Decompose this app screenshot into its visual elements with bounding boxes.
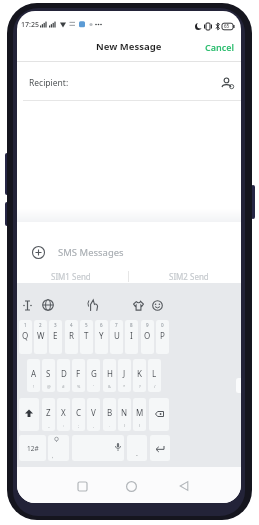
staticText: S bbox=[46, 368, 51, 379]
staticText: @ bbox=[47, 384, 51, 389]
staticText: Recipient: bbox=[29, 77, 69, 89]
staticText: U bbox=[114, 330, 120, 341]
button[interactable]: X bbox=[57, 398, 70, 431]
button[interactable] bbox=[39, 292, 56, 318]
button[interactable]: 1 bbox=[19, 320, 32, 354]
button[interactable]: L bbox=[148, 359, 161, 392]
button[interactable]: 6 bbox=[95, 320, 108, 354]
button[interactable]: K bbox=[133, 359, 146, 392]
staticText: 1 bbox=[24, 322, 27, 328]
staticText: & bbox=[108, 384, 111, 389]
button[interactable]: 3 bbox=[49, 320, 62, 354]
button[interactable]: Z bbox=[42, 398, 55, 431]
staticText: , bbox=[52, 453, 54, 460]
staticText: , bbox=[93, 423, 95, 428]
staticText: L bbox=[152, 368, 157, 379]
staticText: Z bbox=[46, 407, 51, 418]
staticText: W bbox=[37, 330, 45, 341]
button[interactable]: SMS Messages bbox=[32, 245, 124, 260]
button[interactable] bbox=[111, 469, 151, 503]
staticText: SMS Messages bbox=[58, 246, 124, 259]
button[interactable] bbox=[164, 469, 204, 503]
staticText: R bbox=[69, 330, 74, 341]
staticText: # bbox=[62, 384, 65, 389]
button[interactable]: 5 bbox=[80, 320, 93, 354]
staticText: SIM1 Send bbox=[51, 271, 91, 282]
staticText: Y bbox=[99, 330, 104, 341]
button[interactable]: 4 bbox=[65, 320, 78, 354]
button[interactable] bbox=[72, 435, 124, 461]
button[interactable] bbox=[129, 292, 147, 318]
button[interactable]: Cancel bbox=[205, 41, 235, 53]
staticText: B bbox=[107, 407, 113, 418]
button[interactable]: H bbox=[103, 359, 116, 392]
button[interactable]: G bbox=[87, 359, 100, 392]
button[interactable]: Recipient: bbox=[17, 65, 241, 101]
button[interactable]: SIM2 Send bbox=[129, 268, 241, 285]
staticText: V bbox=[91, 407, 96, 418]
staticText: F bbox=[76, 368, 81, 379]
button[interactable] bbox=[84, 292, 102, 318]
staticText: X bbox=[61, 407, 66, 418]
staticText: P bbox=[160, 330, 165, 341]
staticText: ( bbox=[139, 423, 141, 428]
button[interactable] bbox=[19, 398, 39, 431]
button[interactable]: SIM1 Send bbox=[17, 268, 128, 285]
staticText: A bbox=[31, 368, 37, 379]
staticText: H bbox=[107, 368, 113, 379]
staticText: D bbox=[61, 368, 67, 379]
staticText: G bbox=[91, 368, 97, 379]
staticText: K bbox=[137, 368, 142, 379]
staticText: 8 bbox=[130, 322, 133, 328]
button[interactable] bbox=[149, 398, 169, 431]
staticText: ) bbox=[124, 423, 126, 428]
staticText: M bbox=[136, 407, 144, 418]
button[interactable] bbox=[148, 292, 166, 318]
staticText: 5 bbox=[85, 322, 88, 328]
staticText: 9 bbox=[146, 322, 149, 328]
staticText: * bbox=[123, 384, 126, 389]
staticText: New Message bbox=[96, 40, 162, 53]
staticText: 4 bbox=[70, 322, 73, 328]
button[interactable]: D bbox=[57, 359, 70, 392]
staticText: J bbox=[123, 368, 126, 379]
staticText: % bbox=[77, 384, 81, 389]
button[interactable]: S bbox=[42, 359, 55, 392]
button[interactable]: C bbox=[72, 398, 85, 431]
button[interactable]: F bbox=[72, 359, 85, 392]
staticText: ' bbox=[93, 384, 94, 389]
button[interactable]: M bbox=[133, 398, 146, 431]
button[interactable]: J bbox=[118, 359, 131, 392]
staticText: 12# bbox=[27, 444, 39, 453]
staticText: 3 bbox=[54, 322, 57, 328]
staticText: ! bbox=[33, 384, 35, 389]
staticText: ? bbox=[139, 384, 141, 389]
button[interactable]: B bbox=[103, 398, 116, 431]
staticText: 2 bbox=[39, 322, 42, 328]
button[interactable]: 2 bbox=[34, 320, 47, 354]
button[interactable] bbox=[62, 469, 102, 503]
staticText: E bbox=[53, 330, 58, 341]
button[interactable]: 12# bbox=[19, 435, 46, 461]
staticText: 0 bbox=[161, 322, 164, 328]
staticText: : bbox=[63, 423, 65, 428]
staticText: 65 bbox=[224, 23, 230, 29]
button[interactable]: 9 bbox=[141, 320, 154, 354]
staticText: _ bbox=[48, 423, 50, 428]
staticText: I bbox=[130, 330, 133, 341]
button[interactable] bbox=[18, 292, 36, 318]
button[interactable]: 7 bbox=[110, 320, 123, 354]
staticText: SIM2 Send bbox=[169, 271, 209, 282]
staticText: T bbox=[84, 330, 89, 341]
staticText: N bbox=[121, 407, 128, 418]
button[interactable]: N bbox=[118, 398, 131, 431]
button[interactable]: V bbox=[87, 398, 100, 431]
staticText: Q bbox=[22, 330, 29, 341]
button[interactable]: A bbox=[27, 359, 40, 392]
button[interactable] bbox=[150, 435, 170, 461]
button[interactable]: 0 bbox=[156, 320, 169, 354]
button[interactable]: 8 bbox=[125, 320, 138, 354]
staticText: 7 bbox=[115, 322, 118, 328]
button[interactable]: , bbox=[48, 435, 69, 461]
